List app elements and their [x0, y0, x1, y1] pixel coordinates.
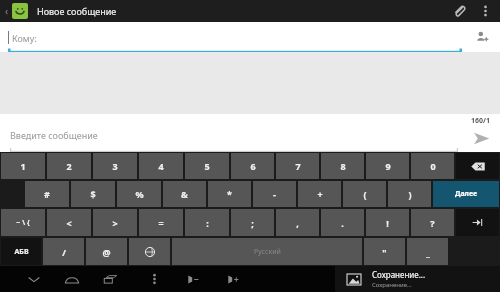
button[interactable]: 3 — [93, 153, 137, 179]
staticText: 9 — [385, 160, 391, 172]
staticText: , — [296, 217, 299, 229]
staticText: 8 — [340, 160, 346, 172]
staticText: ; — [251, 217, 254, 229]
staticText: 0 — [430, 160, 436, 172]
button[interactable]: > — [93, 209, 137, 236]
button[interactable]: # — [25, 181, 69, 207]
button[interactable]: . — [321, 209, 364, 236]
button[interactable]: _ — [407, 238, 448, 265]
staticText: : — [206, 217, 209, 229]
staticText: ! — [386, 217, 389, 229]
button[interactable]: АБВ — [1, 238, 41, 265]
staticText: = — [158, 217, 164, 229]
staticText: # — [44, 188, 50, 200]
button[interactable]: ! — [366, 209, 409, 236]
button[interactable]: Recent apps — [98, 267, 122, 291]
staticText: 4 — [158, 160, 164, 172]
staticText: 1 — [20, 160, 26, 172]
staticText: * — [227, 188, 232, 200]
staticText: / — [62, 246, 66, 258]
button[interactable]: ) — [388, 181, 431, 207]
staticText: 6 — [250, 160, 256, 172]
button[interactable]: ( — [343, 181, 386, 207]
staticText: " — [382, 246, 387, 258]
button[interactable]: Add contact — [470, 25, 494, 49]
button[interactable]: ; — [231, 209, 274, 236]
button[interactable]: 9 — [366, 153, 409, 179]
button[interactable]: ? — [411, 209, 454, 236]
staticText: Русский — [254, 247, 281, 257]
staticText: @ — [102, 246, 111, 258]
button[interactable]: * — [208, 181, 251, 207]
button[interactable]: Сохранение... — [335, 266, 500, 292]
staticText: Сохранение... — [372, 269, 426, 280]
staticText: $ — [90, 188, 96, 200]
staticText: > — [112, 217, 118, 229]
button[interactable]: Home — [60, 267, 84, 291]
staticText: < — [66, 217, 72, 229]
button[interactable]: More options — [474, 0, 496, 22]
staticText: - — [273, 188, 276, 200]
button[interactable]: : — [185, 209, 229, 236]
button[interactable]: 4 — [139, 153, 183, 179]
button[interactable]: 2 — [47, 153, 91, 179]
staticText: ) — [408, 188, 412, 200]
button[interactable]: @ — [86, 238, 127, 265]
staticText: 3 — [112, 160, 118, 172]
button[interactable]: 5 — [185, 153, 229, 179]
staticText: 5 — [204, 160, 210, 172]
button[interactable]: 6 — [231, 153, 274, 179]
staticText: % — [135, 188, 144, 200]
staticText: 160/1 — [471, 116, 490, 126]
button[interactable]: ~ \ { — [1, 209, 45, 236]
staticText: ? — [430, 217, 435, 229]
button[interactable]: < — [47, 209, 91, 236]
button[interactable]: 8 — [321, 153, 364, 179]
button[interactable]: , — [276, 209, 319, 236]
staticText: Далее — [455, 189, 478, 199]
staticText: 2 — [66, 160, 72, 172]
button[interactable]: $ — [71, 181, 115, 207]
staticText: Новое сообщение — [37, 5, 117, 17]
button[interactable]: - — [253, 181, 296, 207]
button[interactable]: 0 — [411, 153, 454, 179]
staticText: АБВ — [14, 247, 29, 257]
button[interactable]: / — [43, 238, 84, 265]
button[interactable]: Change language — [129, 238, 170, 265]
staticText: Кому: — [12, 32, 37, 44]
button[interactable]: Введите сообщение — [10, 124, 458, 152]
button[interactable]: 7 — [276, 153, 319, 179]
button[interactable]: & — [163, 181, 206, 207]
staticText: 7 — [295, 160, 301, 172]
staticText: + — [317, 188, 323, 200]
button[interactable]: Menu — [144, 269, 164, 289]
button[interactable]: % — [117, 181, 161, 207]
staticText: . — [341, 217, 344, 229]
button[interactable]: + — [298, 181, 341, 207]
button[interactable]: Русский — [172, 238, 362, 265]
staticText: _ — [426, 246, 430, 258]
button[interactable]: 1 — [1, 153, 45, 179]
button[interactable]: Attach — [444, 0, 474, 22]
button[interactable]: Volume up — [222, 268, 244, 290]
staticText: ~ \ { — [16, 218, 30, 228]
button[interactable]: Кому: — [8, 22, 462, 52]
button[interactable]: Volume down — [182, 268, 204, 290]
staticText: Введите сообщение — [10, 129, 98, 141]
staticText: Сохранение... — [372, 281, 412, 289]
staticText: ( — [363, 188, 367, 200]
staticText: ‹ — [5, 4, 9, 18]
button[interactable]: Tab — [456, 209, 499, 236]
button[interactable]: Далее — [433, 181, 499, 207]
button[interactable]: Hide keyboard — [22, 267, 46, 291]
button[interactable]: Send — [468, 125, 494, 151]
button[interactable]: Backspace — [456, 153, 499, 179]
button[interactable]: " — [364, 238, 405, 265]
button[interactable]: = — [139, 209, 183, 236]
staticText: & — [181, 188, 188, 200]
